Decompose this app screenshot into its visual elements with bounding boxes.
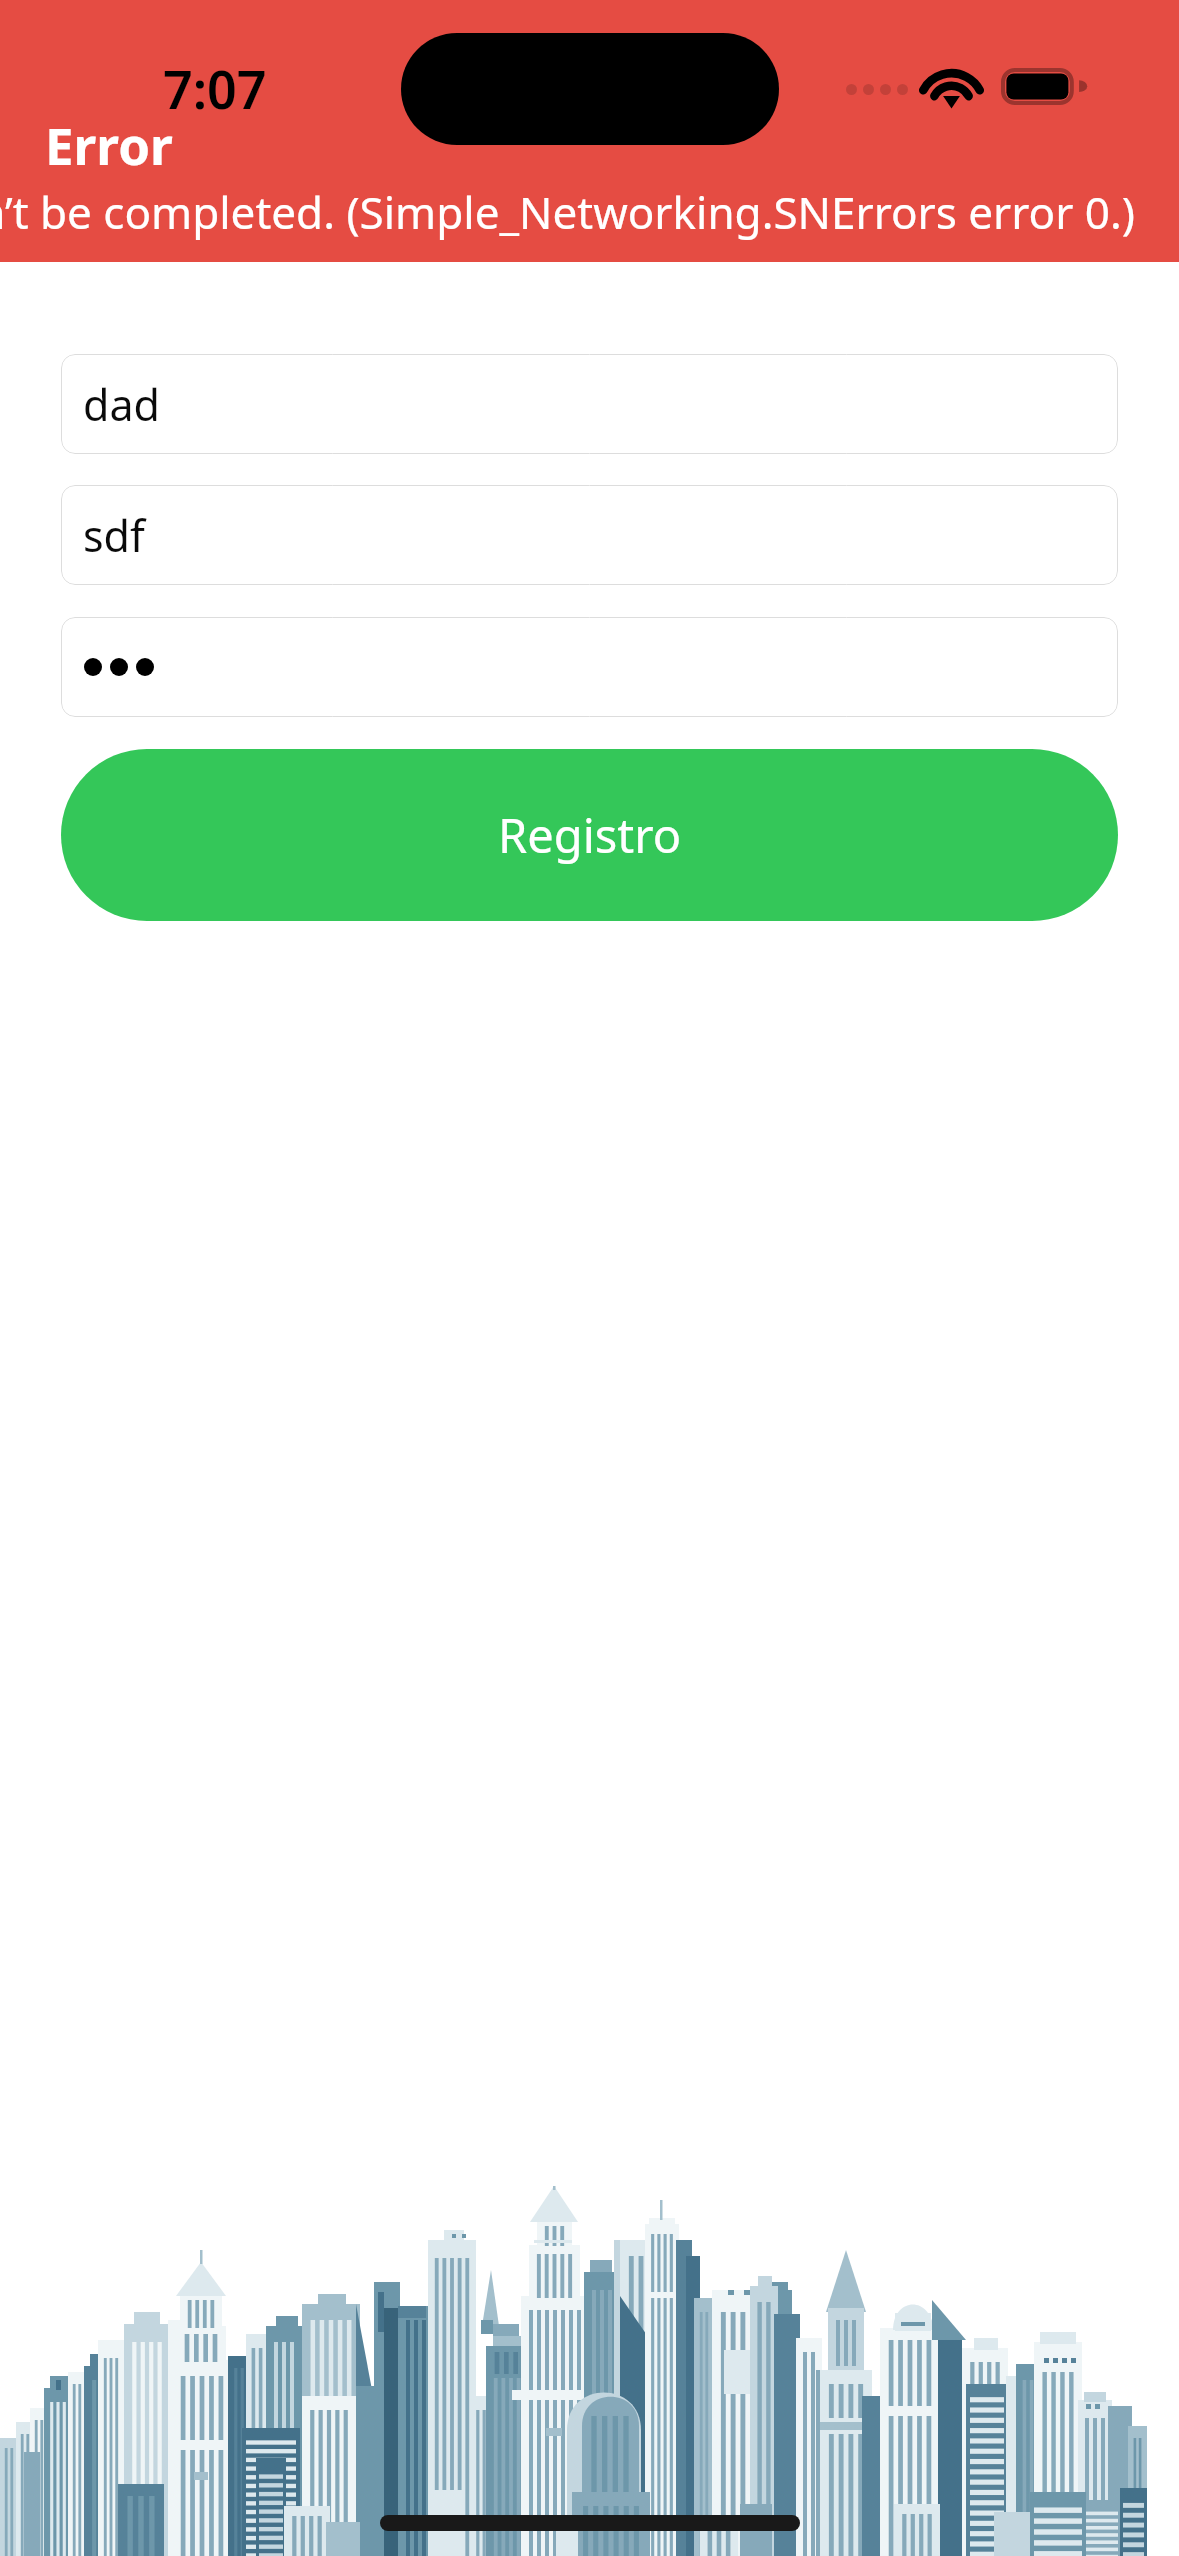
button[interactable]: Registro: [61, 749, 1118, 921]
other: Battery: [1001, 68, 1084, 105]
button[interactable]: [61, 617, 1118, 717]
staticText: The operation couldn’t be completed. (Si…: [0, 182, 1135, 242]
staticText: sdf: [83, 506, 145, 565]
other: Wi-Fi: [926, 66, 977, 106]
button[interactable]: sdf: [61, 485, 1118, 585]
staticText: Error: [45, 110, 173, 179]
button[interactable]: dad: [61, 354, 1118, 454]
staticText: 7:07: [163, 53, 267, 124]
staticText: dad: [83, 375, 161, 434]
staticText: Registro: [498, 803, 682, 867]
